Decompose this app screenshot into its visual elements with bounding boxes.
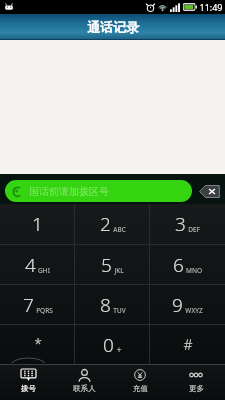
staticText: 国话前请加拨区号 (29, 185, 109, 198)
staticText: 联系人 (73, 384, 96, 393)
button[interactable]: # (150, 325, 225, 364)
staticText: PQRS (36, 306, 53, 315)
staticText: MNO (186, 266, 202, 275)
staticText: 充值 (133, 384, 148, 393)
button[interactable]: 3 (150, 204, 225, 244)
button[interactable]: 充值 (112, 364, 168, 400)
staticText: + (116, 343, 122, 355)
button[interactable]: 4 (0, 245, 75, 284)
staticText: 9 (172, 292, 183, 318)
button[interactable]: * (0, 325, 75, 364)
button[interactable]: 1 (0, 204, 75, 244)
staticText: WXYZ (185, 306, 203, 315)
staticText: 7 (23, 292, 34, 318)
staticText: 6 (173, 252, 184, 278)
button[interactable]: 8 (75, 285, 150, 324)
button[interactable]: 联系人 (56, 364, 112, 400)
staticText: 更多 (189, 384, 204, 393)
staticText: 2 (100, 211, 111, 237)
button[interactable]: 6 (150, 245, 225, 284)
staticText: 1 (32, 211, 43, 237)
staticText: 8 (100, 292, 111, 318)
staticText: JKL (114, 266, 124, 275)
staticText: # (183, 335, 193, 354)
button[interactable]: 9 (150, 285, 225, 324)
staticText: DEF (188, 225, 200, 234)
button[interactable]: 2 (75, 204, 150, 244)
staticText: 通话记录 (87, 19, 139, 35)
staticText: 3 (175, 211, 186, 237)
staticText: 拨号 (21, 384, 36, 393)
staticText: 5 (101, 252, 112, 278)
staticText: 11:49 (199, 1, 223, 13)
button[interactable]: 5 (75, 245, 150, 284)
staticText: * (34, 334, 42, 353)
button[interactable]: 国话前请加拨区号 (5, 180, 192, 202)
staticText: GHI (38, 266, 50, 275)
button[interactable]: Delete (199, 184, 220, 199)
staticText: TUV (113, 306, 126, 315)
button[interactable]: 0 (75, 325, 150, 364)
button[interactable]: 7 (0, 285, 75, 324)
button[interactable]: 更多 (168, 364, 224, 400)
staticText: ABC (113, 225, 126, 234)
staticText: 4 (25, 252, 36, 278)
button[interactable]: 拨号 (0, 364, 56, 400)
staticText: 0 (103, 332, 114, 358)
